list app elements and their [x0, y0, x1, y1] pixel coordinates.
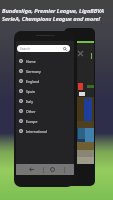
button[interactable]: Italy — [16, 96, 74, 106]
button[interactable]: Search — [17, 45, 70, 52]
button[interactable]: Home — [16, 56, 74, 66]
staticText: Germany — [26, 69, 41, 74]
button[interactable]: Europe — [16, 116, 74, 126]
button[interactable]: Germany — [16, 66, 74, 76]
staticText: International — [26, 129, 47, 134]
staticText: Europe — [26, 119, 38, 124]
staticText: England — [26, 79, 40, 84]
staticText: Spain — [26, 89, 35, 94]
staticText: Other — [26, 109, 36, 114]
button[interactable]: Spain — [16, 86, 74, 96]
staticText: Home — [26, 59, 36, 64]
button[interactable]: Back — [27, 164, 35, 175]
button[interactable]: International — [16, 126, 74, 136]
staticText: Search — [20, 47, 31, 51]
staticText: SerieA, Champions League and more! — [2, 15, 101, 23]
button[interactable]: Reload — [48, 164, 56, 175]
button[interactable]: Other — [16, 106, 74, 116]
button[interactable]: England — [16, 76, 74, 86]
staticText: Italy — [26, 99, 33, 104]
staticText: Bundesliga, Premier League, LigaBBVA — [2, 7, 104, 15]
